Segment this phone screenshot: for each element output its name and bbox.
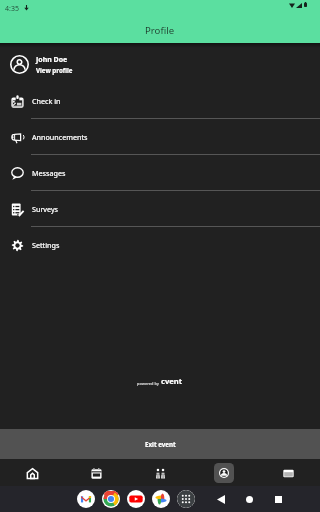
button[interactable]: Messages: [0, 155, 320, 191]
button[interactable]: Check in: [0, 83, 320, 119]
staticText: Settings: [32, 240, 60, 250]
button[interactable]: More: [256, 459, 320, 486]
button[interactable]: App 2: [127, 490, 145, 508]
staticText: Announcements: [32, 132, 88, 142]
staticText: cvent: [161, 376, 183, 386]
button[interactable]: Schedule: [64, 459, 128, 486]
button[interactable]: App 4: [177, 490, 195, 508]
button[interactable]: Home: [0, 459, 64, 486]
button[interactable]: Exit event: [0, 429, 320, 459]
button[interactable]: Profile: [192, 459, 256, 486]
button[interactable]: John Doe: [0, 47, 320, 82]
staticText: Check in: [32, 96, 61, 106]
staticText: Profile: [145, 24, 175, 37]
staticText: View profile: [36, 66, 73, 74]
staticText: 4:35: [5, 4, 19, 14]
other: Back: [217, 495, 225, 504]
button[interactable]: Surveys: [0, 191, 320, 227]
other: Home: [246, 496, 253, 503]
staticText: John Doe: [36, 55, 68, 65]
button[interactable]: Announcements: [0, 119, 320, 155]
button[interactable]: Settings: [0, 227, 320, 263]
button[interactable]: App 3: [152, 490, 170, 508]
button[interactable]: App 1: [102, 490, 120, 508]
button[interactable]: App 0: [77, 490, 95, 508]
staticText: Exit event: [145, 440, 176, 448]
staticText: powered by: [137, 381, 159, 386]
staticText: Messages: [32, 168, 66, 178]
button[interactable]: Attendees: [128, 459, 192, 486]
staticText: Surveys: [32, 204, 59, 214]
